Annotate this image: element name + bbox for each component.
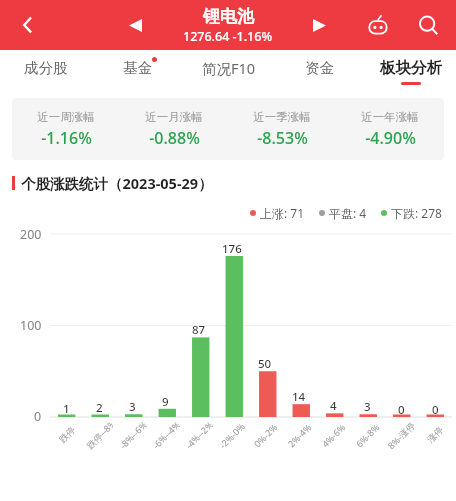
staticText: -0.88%: [149, 127, 200, 149]
staticText: 资金: [305, 59, 334, 77]
staticText: 成分股: [24, 59, 68, 77]
staticText: 0: [432, 402, 439, 418]
staticText: 简况F10: [202, 58, 256, 78]
button[interactable]: Back: [6, 3, 50, 47]
staticText: 上涨: 71: [260, 205, 305, 221]
button[interactable]: Previous sector: [118, 8, 152, 42]
staticText: 3: [364, 399, 371, 415]
button[interactable]: 近一年涨幅: [336, 110, 444, 149]
staticText: 0%-2%: [251, 420, 280, 449]
staticText: 4: [330, 398, 337, 414]
staticText: -4.90%: [365, 127, 416, 149]
staticText: 1276.64 -1.16%: [183, 28, 273, 45]
staticText: -6%--4%: [150, 419, 181, 451]
staticText: 涨停: [425, 424, 445, 445]
button[interactable]: 上涨: 71: [250, 205, 305, 221]
staticText: 176: [222, 241, 242, 257]
button[interactable]: 资金: [274, 50, 365, 92]
staticText: 近一月涨幅: [145, 110, 203, 124]
staticText: 1: [63, 401, 70, 417]
staticText: 2: [96, 400, 103, 416]
staticText: 板块分析: [380, 58, 442, 78]
staticText: 0: [398, 402, 405, 418]
staticText: 跌停--8%: [84, 419, 115, 451]
staticText: 100: [20, 317, 42, 334]
button[interactable]: Search: [408, 5, 448, 45]
button[interactable]: 平盘: 4: [319, 205, 367, 221]
staticText: -1.16%: [41, 127, 92, 149]
staticText: -8%--6%: [117, 419, 148, 451]
button[interactable]: 简况F10: [183, 50, 274, 92]
staticText: 锂电池: [203, 6, 254, 27]
staticText: 跌停: [57, 424, 77, 445]
staticText: 8%-涨停: [385, 419, 417, 451]
staticText: 个股涨跌统计（2023-05-29）: [21, 173, 213, 193]
staticText: 200: [20, 226, 42, 243]
staticText: 近一周涨幅: [37, 110, 95, 124]
button[interactable]: Assistant: [358, 5, 398, 45]
staticText: 9: [162, 394, 169, 410]
button[interactable]: 近一月涨幅: [120, 110, 228, 149]
button[interactable]: 近一周涨幅: [12, 110, 120, 149]
staticText: 87: [192, 322, 206, 338]
staticText: 近一季涨幅: [253, 110, 311, 124]
staticText: -8.53%: [257, 127, 308, 149]
button[interactable]: 近一季涨幅: [228, 110, 336, 149]
staticText: -2%-0%: [216, 419, 247, 450]
button[interactable]: 基金: [92, 50, 183, 92]
staticText: 下跌: 278: [391, 205, 442, 221]
staticText: 3: [129, 399, 136, 415]
button[interactable]: Next sector: [302, 8, 336, 42]
button[interactable]: 板块分析: [365, 50, 456, 92]
staticText: 0: [34, 408, 42, 425]
staticText: 近一年涨幅: [361, 110, 419, 124]
button[interactable]: 下跌: 278: [381, 205, 442, 221]
staticText: 基金: [123, 59, 152, 77]
staticText: -4%--2%: [183, 419, 214, 451]
staticText: 平盘: 4: [329, 205, 367, 221]
staticText: 50: [258, 356, 272, 372]
button[interactable]: 成分股: [0, 50, 92, 92]
staticText: 4%-6%: [319, 420, 348, 449]
staticText: 2%-4%: [285, 420, 314, 449]
staticText: 14: [292, 389, 306, 405]
staticText: 6%-8%: [353, 420, 382, 449]
